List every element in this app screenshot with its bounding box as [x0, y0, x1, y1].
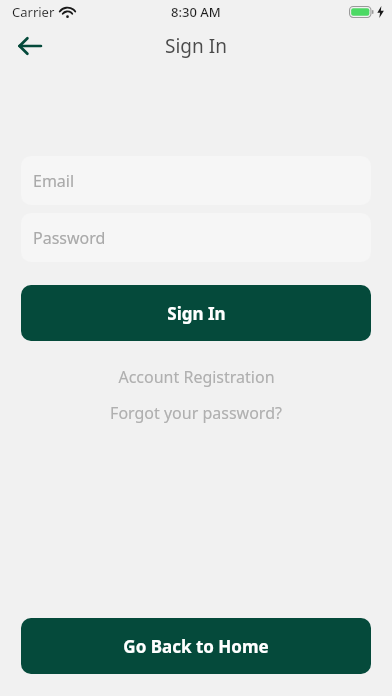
staticText: Password [33, 227, 106, 249]
staticText: Account Registration [118, 366, 275, 388]
button[interactable]: Forgot your password? [0, 399, 392, 427]
button[interactable]: Back [10, 26, 50, 66]
button[interactable]: Go Back to Home [21, 618, 371, 674]
button[interactable]: Sign In [21, 285, 371, 341]
staticText: Sign In [165, 33, 227, 59]
button[interactable]: Email [21, 156, 371, 205]
button[interactable]: Password [21, 213, 371, 262]
button[interactable]: Account Registration [0, 363, 392, 391]
staticText: Forgot your password? [110, 402, 282, 424]
staticText: Go Back to Home [123, 635, 269, 658]
staticText: Carrier [12, 3, 55, 21]
staticText: 8:30 AM [171, 3, 221, 21]
staticText: Email [33, 170, 75, 192]
staticText: Sign In [167, 302, 226, 325]
